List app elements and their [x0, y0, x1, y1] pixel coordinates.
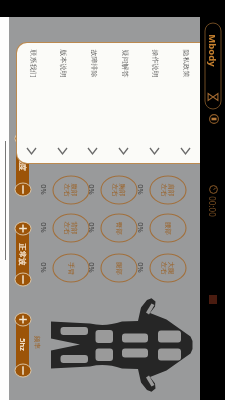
button[interactable]	[139, 43, 170, 162]
staticText: 腹部左右	[64, 183, 78, 197]
staticText: 肩部左右	[161, 183, 175, 197]
button[interactable]	[205, 23, 221, 109]
staticText: 频率	[33, 336, 41, 349]
button[interactable]	[108, 43, 139, 162]
staticText: 5hz	[18, 338, 28, 351]
staticText: 腿部	[115, 262, 123, 275]
button[interactable]: Increase	[15, 222, 31, 235]
staticText: 联系我们	[28, 49, 37, 77]
button[interactable]: Increase	[15, 132, 31, 145]
staticText: 0%	[136, 184, 146, 195]
staticText: 0%	[87, 222, 97, 233]
button[interactable]	[53, 176, 89, 204]
staticText: 臀部	[115, 222, 123, 235]
staticText: 正常波	[18, 243, 27, 266]
button[interactable]	[101, 254, 137, 282]
staticText: 故障排除	[89, 49, 98, 77]
staticText: 腰部	[164, 222, 172, 235]
button[interactable]	[78, 43, 109, 162]
button[interactable]	[53, 254, 89, 282]
staticText: Mbody	[206, 34, 219, 67]
button[interactable]	[150, 176, 186, 204]
staticText: 疑问解答	[120, 49, 129, 77]
staticText: 背部左右	[64, 221, 78, 235]
button[interactable]	[16, 43, 47, 162]
staticText: 00:00	[207, 196, 218, 217]
button[interactable]: Battery	[209, 114, 219, 124]
staticText: 0%	[39, 262, 49, 273]
button[interactable]: Decrease	[15, 364, 31, 377]
staticText: 手臂	[67, 262, 75, 275]
button[interactable]: Connect	[206, 90, 220, 104]
button[interactable]	[150, 214, 186, 242]
button[interactable]	[47, 43, 78, 162]
button[interactable]: Decrease	[15, 183, 31, 196]
button[interactable]: Increase	[15, 313, 31, 326]
button[interactable]	[53, 214, 89, 242]
staticText: 0%	[87, 262, 97, 273]
button[interactable]	[170, 43, 201, 162]
button[interactable]	[101, 214, 137, 242]
staticText: 大腿左右	[161, 261, 175, 275]
button[interactable]: Decrease	[15, 273, 31, 286]
button[interactable]	[101, 176, 137, 204]
staticText: 0%	[87, 184, 97, 195]
staticText: 隐私政策	[181, 49, 190, 77]
staticText: 版本说明	[58, 49, 67, 77]
button[interactable]	[150, 254, 186, 282]
staticText: 胸部左右	[112, 183, 126, 197]
staticText: 操作说明	[150, 49, 159, 77]
staticText: 0%	[39, 222, 49, 233]
other: Timer	[209, 185, 218, 194]
staticText: 0%	[136, 222, 146, 233]
staticText: 0%	[39, 184, 49, 195]
staticText: 0%	[136, 262, 146, 273]
staticText: 强度	[18, 156, 27, 171]
